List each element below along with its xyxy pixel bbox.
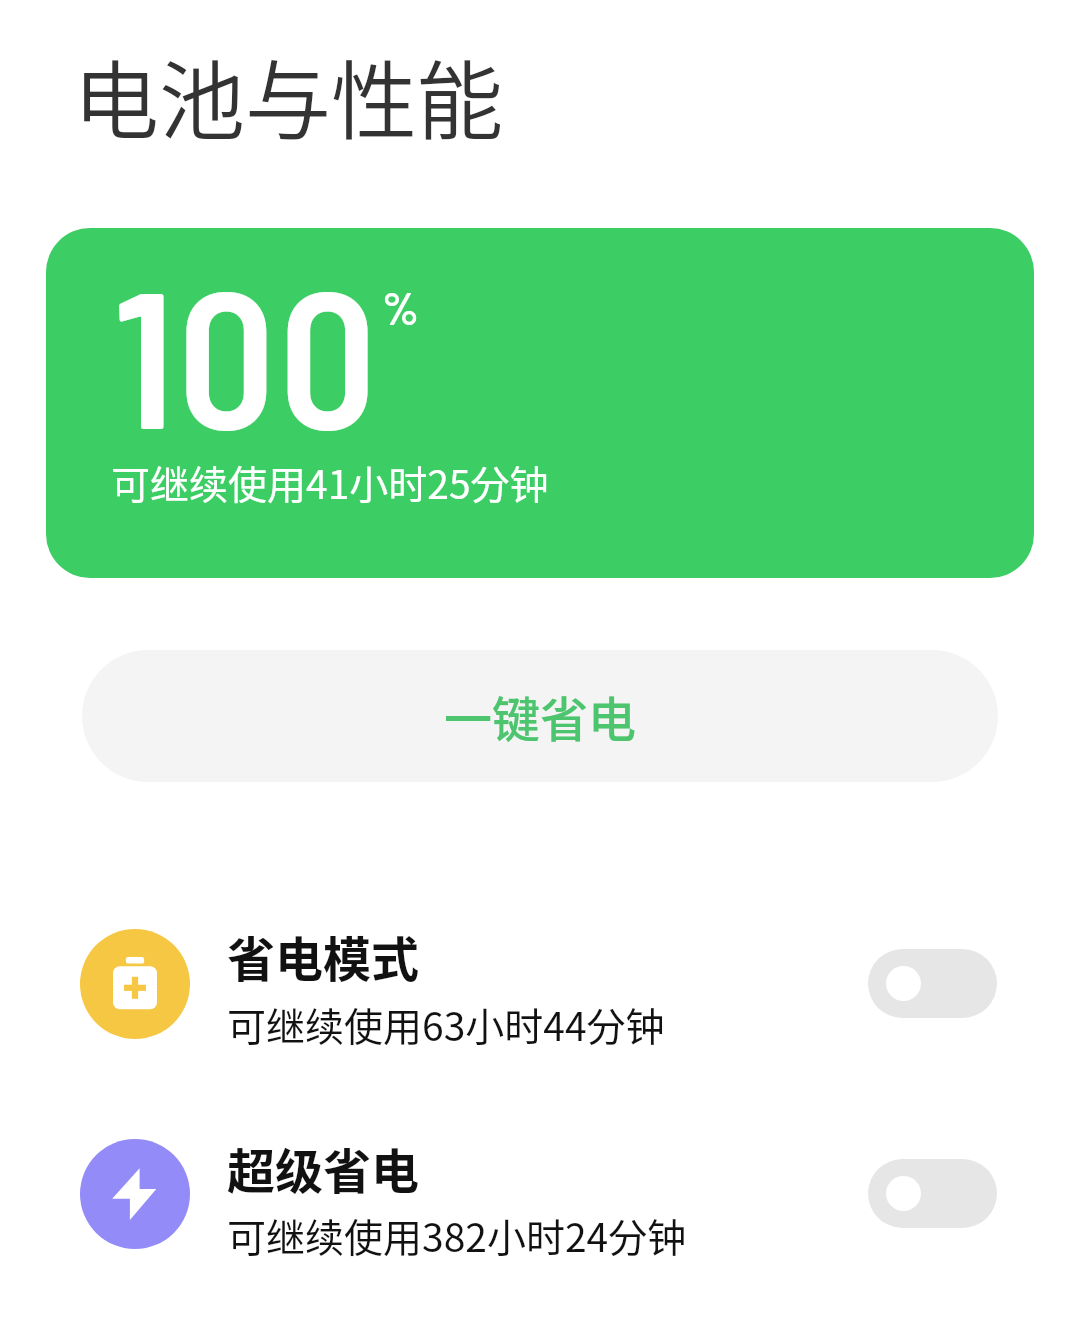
staticText: 超级省电 — [227, 1133, 420, 1203]
staticText: % — [382, 279, 419, 334]
button[interactable]: 100 — [46, 228, 1034, 578]
staticText: 电池与性能 — [73, 33, 503, 158]
button[interactable]: 超级省电 — [0, 1089, 1080, 1297]
button[interactable]: Toggle 超级省电 — [868, 1159, 997, 1228]
staticText: 100 — [114, 237, 381, 467]
staticText: 可继续使用382小时24分钟 — [227, 1207, 687, 1263]
staticText: 可继续使用41小时25分钟 — [111, 454, 549, 510]
staticText: 一键省电 — [444, 681, 637, 751]
button[interactable]: Toggle 省电模式 — [868, 949, 997, 1018]
staticText: 可继续使用63小时44分钟 — [227, 996, 665, 1052]
staticText: 省电模式 — [227, 921, 420, 991]
button[interactable]: 一键省电 — [82, 650, 998, 782]
button[interactable]: 省电模式 — [0, 879, 1080, 1087]
